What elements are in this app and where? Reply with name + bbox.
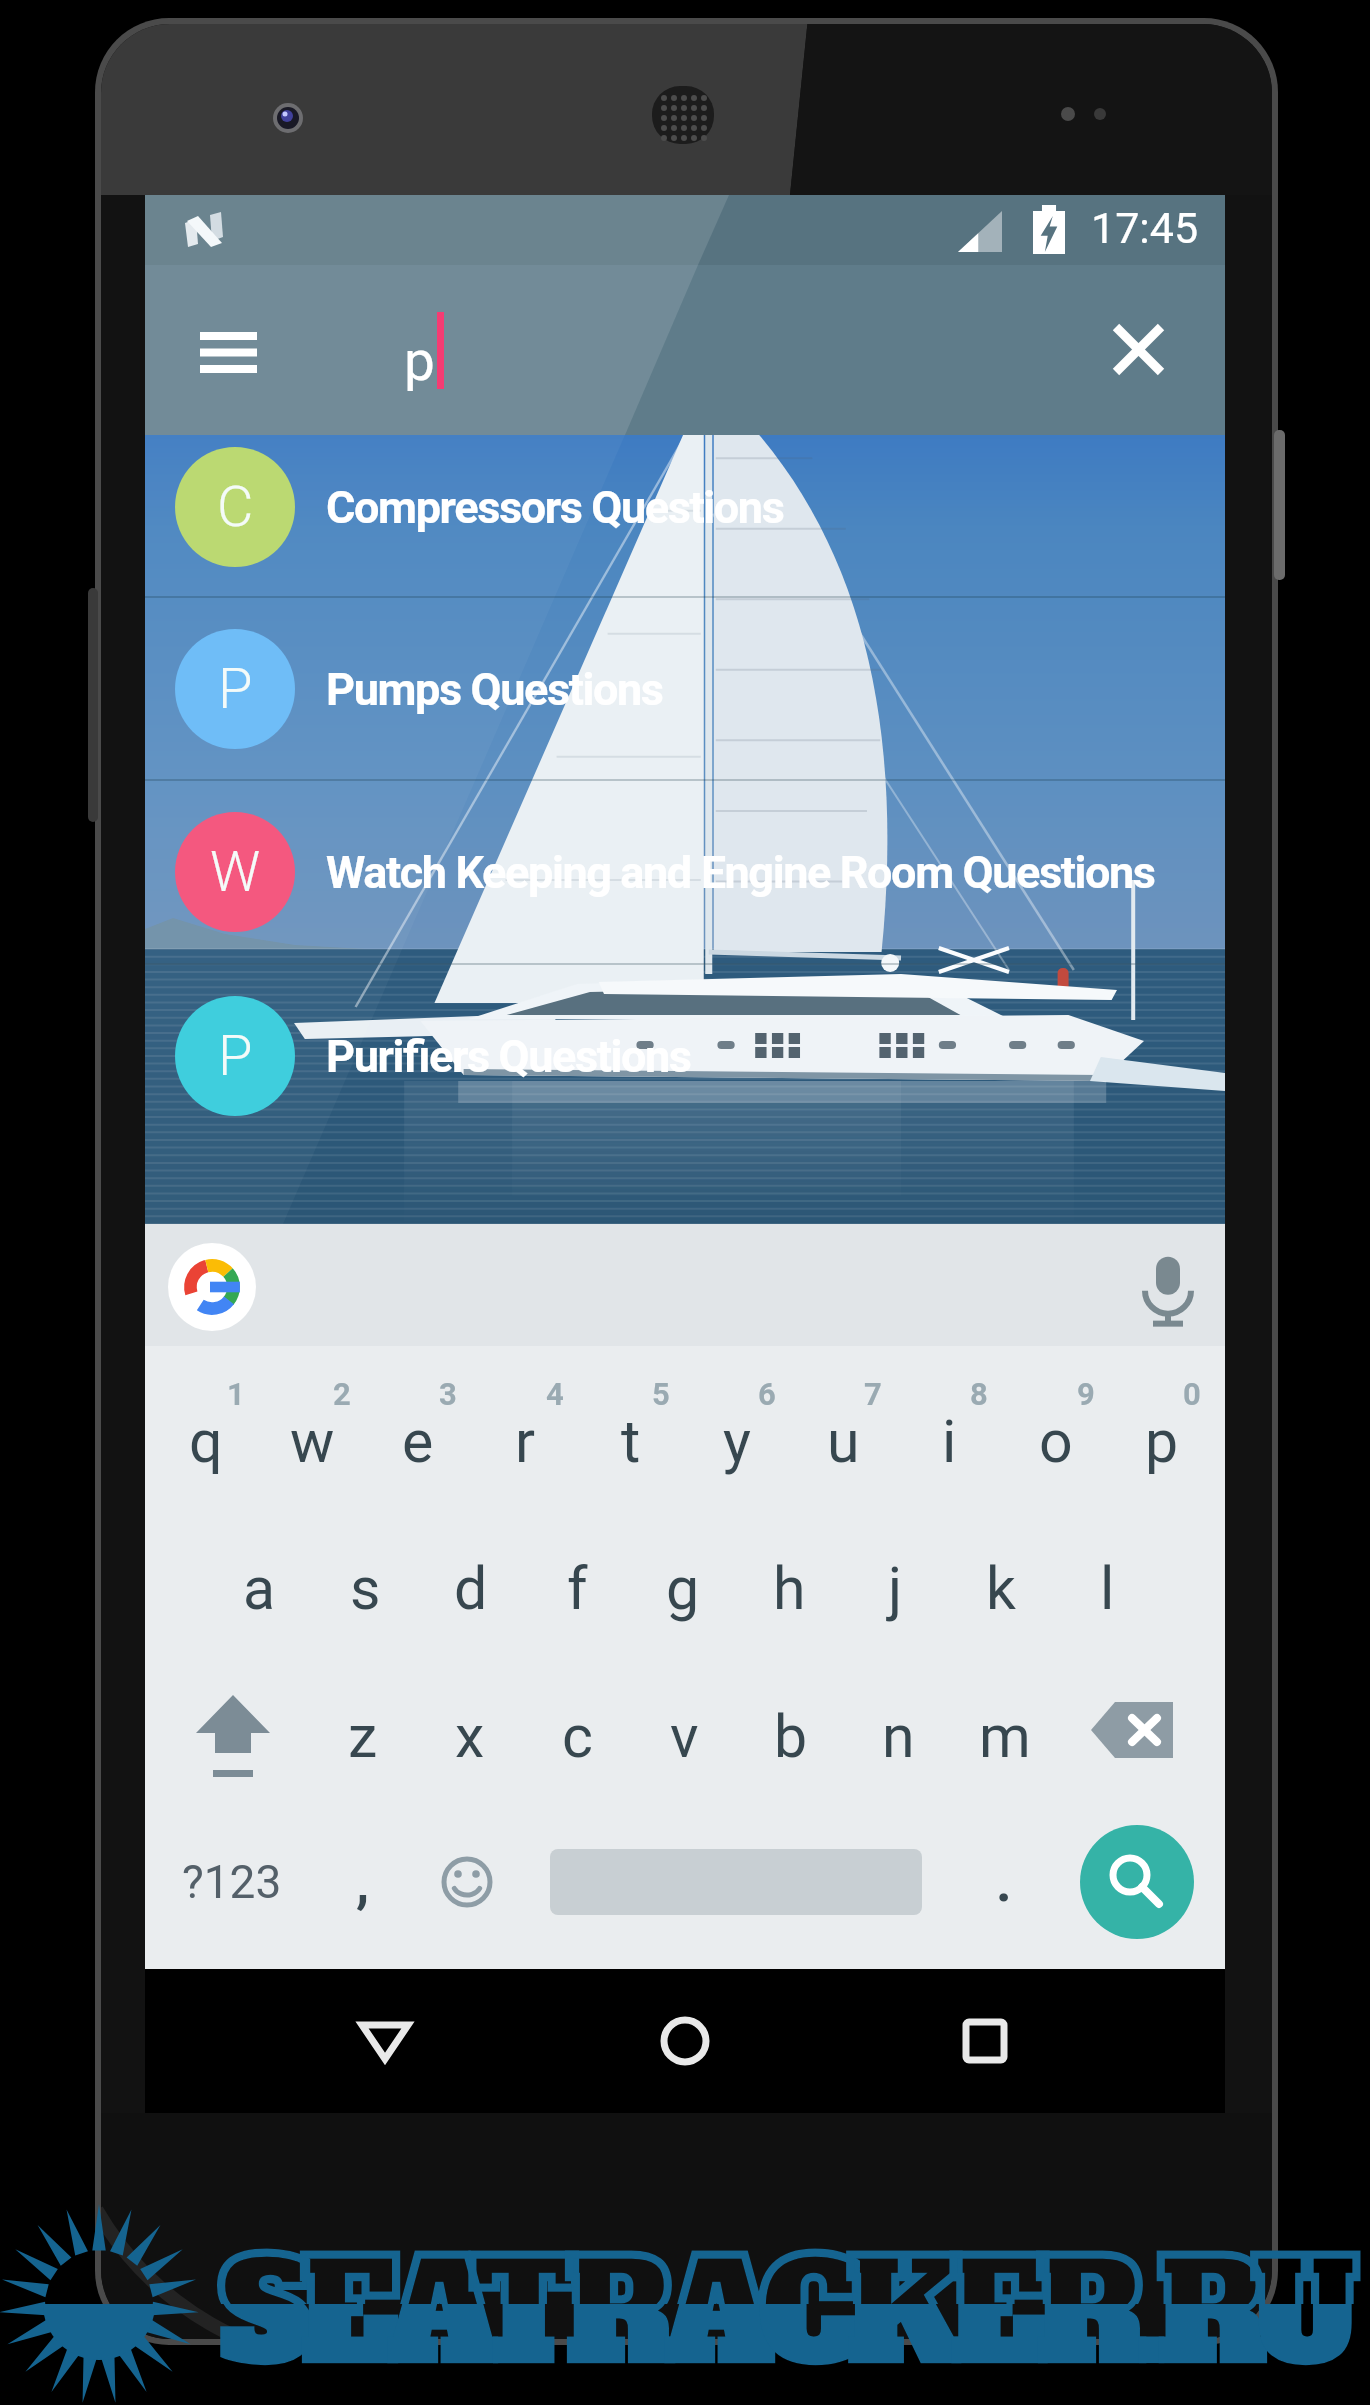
staticText: c xyxy=(562,1702,593,1771)
staticText: p xyxy=(1145,1407,1179,1476)
staticText: x xyxy=(455,1702,485,1771)
button[interactable]: n xyxy=(844,1662,952,1810)
button[interactable]: Search xyxy=(1080,1825,1194,1939)
staticText: P xyxy=(218,656,253,722)
button[interactable]: t xyxy=(577,1367,685,1515)
staticText: , xyxy=(356,1851,370,1914)
button[interactable]: W xyxy=(145,780,1225,962)
staticText: s xyxy=(350,1554,381,1623)
staticText: h xyxy=(773,1554,806,1623)
staticText: C xyxy=(217,474,254,540)
staticText: a xyxy=(243,1554,276,1623)
button[interactable]: Voice input xyxy=(1130,1246,1206,1322)
staticText: w xyxy=(290,1407,335,1476)
button[interactable]: q xyxy=(152,1367,260,1515)
staticText: z xyxy=(348,1702,378,1771)
button[interactable]: Shift xyxy=(179,1662,287,1810)
staticText: Pumps Questions xyxy=(326,663,663,716)
staticText: r xyxy=(515,1407,535,1476)
staticText: 0 xyxy=(1183,1376,1201,1412)
staticText: j xyxy=(888,1554,903,1623)
staticText: t xyxy=(621,1407,641,1476)
staticText: W xyxy=(210,839,261,905)
staticText: f xyxy=(567,1554,588,1623)
button[interactable]: C xyxy=(145,415,1225,597)
staticText: P xyxy=(218,1023,253,1089)
staticText: o xyxy=(1039,1407,1073,1476)
button[interactable]: Home xyxy=(630,1986,740,2096)
button[interactable]: i xyxy=(895,1367,1003,1515)
staticText: 1 xyxy=(227,1376,245,1412)
staticText: p xyxy=(404,329,435,393)
button[interactable]: p xyxy=(1108,1367,1216,1515)
button[interactable]: x xyxy=(416,1662,524,1810)
button[interactable]: a xyxy=(205,1514,313,1662)
button[interactable]: Google xyxy=(168,1243,256,1331)
staticText: y xyxy=(723,1407,751,1476)
button[interactable]: e xyxy=(364,1367,472,1515)
button[interactable]: Emoji xyxy=(422,1808,512,1956)
button[interactable]: j xyxy=(841,1514,949,1662)
staticText: d xyxy=(454,1554,488,1623)
staticText: q xyxy=(189,1407,223,1476)
button[interactable]: ?123 xyxy=(145,1808,319,1956)
button[interactable]: m xyxy=(951,1662,1059,1810)
staticText: SEATRACKER.RU xyxy=(220,2220,1348,2405)
button[interactable]: u xyxy=(789,1367,897,1515)
staticText: Compressors Questions xyxy=(326,481,784,534)
button[interactable]: l xyxy=(1053,1514,1161,1662)
staticText: 8 xyxy=(970,1376,988,1412)
button[interactable]: Close search xyxy=(1079,290,1199,410)
button[interactable]: r xyxy=(471,1367,579,1515)
button[interactable]: P xyxy=(145,964,1225,1146)
staticText: 6 xyxy=(758,1376,776,1412)
button[interactable]: Backspace xyxy=(1079,1662,1187,1810)
button[interactable]: o xyxy=(1002,1367,1110,1515)
staticText: 7 xyxy=(864,1376,882,1412)
button[interactable]: v xyxy=(630,1662,738,1810)
staticText: SEATRACKER.RU xyxy=(220,2220,1348,2405)
staticText: g xyxy=(666,1554,700,1623)
staticText: l xyxy=(1100,1554,1115,1623)
staticText: i xyxy=(942,1407,957,1476)
button[interactable]: b xyxy=(737,1662,845,1810)
staticText: ?123 xyxy=(182,1855,282,1909)
button[interactable]: Open navigation drawer xyxy=(172,290,292,410)
button[interactable]: Space xyxy=(550,1808,922,1956)
staticText: k xyxy=(986,1554,1016,1623)
staticText: v xyxy=(670,1702,699,1771)
button[interactable]: f xyxy=(523,1514,631,1662)
staticText: . xyxy=(996,1851,1012,1914)
staticText: u xyxy=(827,1407,860,1476)
button[interactable]: z xyxy=(309,1662,417,1810)
staticText: Purifiers Questions xyxy=(326,1030,691,1083)
staticText: 3 xyxy=(439,1376,457,1412)
button[interactable]: h xyxy=(735,1514,843,1662)
staticText: 9 xyxy=(1077,1376,1095,1412)
staticText: n xyxy=(882,1702,915,1771)
button[interactable]: g xyxy=(629,1514,737,1662)
staticText: 5 xyxy=(652,1376,670,1412)
button[interactable]: y xyxy=(683,1367,791,1515)
button[interactable]: P xyxy=(145,597,1225,779)
staticText: Watch Keeping and Engine Room Questions xyxy=(326,846,1155,899)
button[interactable]: w xyxy=(258,1367,366,1515)
button[interactable]: . xyxy=(959,1808,1049,1956)
button[interactable]: d xyxy=(417,1514,525,1662)
button[interactable]: Back xyxy=(330,1986,440,2096)
staticText: e xyxy=(402,1407,434,1476)
button[interactable]: c xyxy=(523,1662,631,1810)
staticText: 2 xyxy=(333,1376,351,1412)
staticText: 17:45 xyxy=(1091,203,1199,253)
staticText: m xyxy=(979,1702,1031,1771)
staticText: b xyxy=(774,1702,808,1771)
button[interactable]: , xyxy=(318,1808,408,1956)
button[interactable]: Recent apps xyxy=(930,1986,1040,2096)
staticText: 4 xyxy=(546,1376,564,1412)
button[interactable]: k xyxy=(947,1514,1055,1662)
button[interactable]: s xyxy=(311,1514,419,1662)
